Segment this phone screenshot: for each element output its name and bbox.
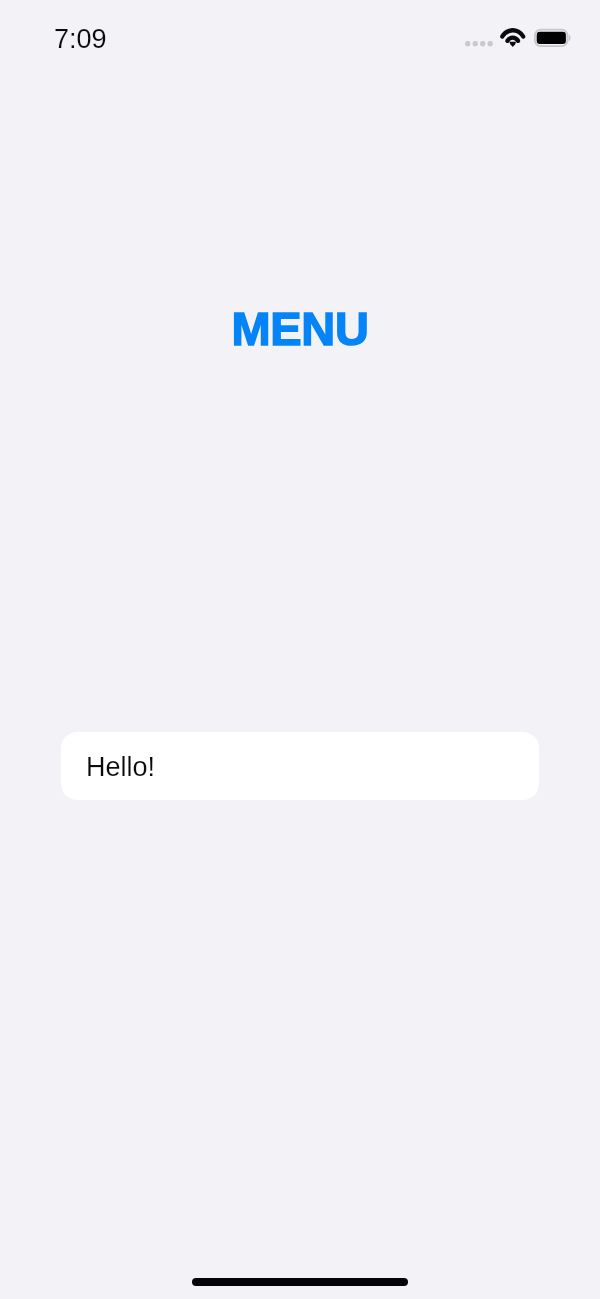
other: Home indicator xyxy=(192,1278,408,1286)
other: Wi-Fi xyxy=(500,26,526,48)
button[interactable]: MENU xyxy=(0,296,600,354)
staticText: Hello! xyxy=(86,752,156,782)
other: Cellular signal xyxy=(465,41,494,50)
button[interactable]: Hello! xyxy=(61,732,539,800)
staticText: MENU xyxy=(0,302,600,355)
other: Battery full xyxy=(534,28,573,48)
staticText: 7:09 xyxy=(54,24,107,54)
